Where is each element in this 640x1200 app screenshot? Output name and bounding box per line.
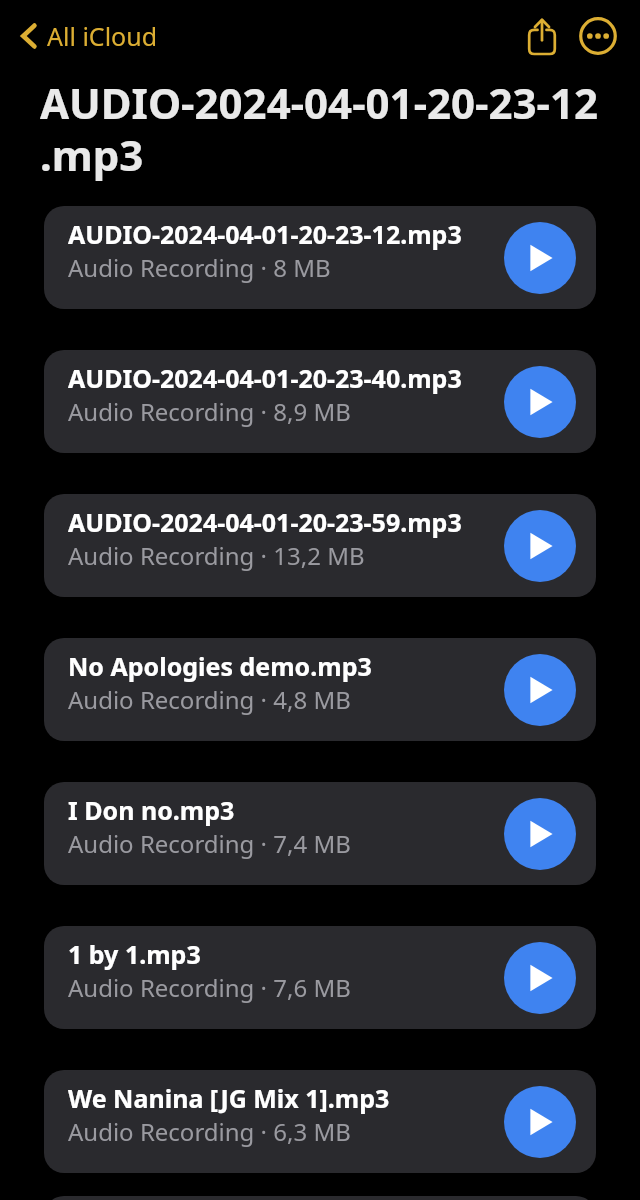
button[interactable]: No Apologies demo.mp3	[44, 638, 596, 741]
button[interactable]: Play AUDIO-2024-04-01-20-23-59.mp3	[504, 510, 576, 582]
button[interactable]: 1 by 1.mp3	[44, 926, 596, 1029]
button[interactable]: AUDIO-2024-04-01-20-23-59.mp3	[44, 494, 596, 597]
button[interactable]	[44, 1196, 596, 1200]
staticText: I Don no.mp3	[68, 793, 235, 827]
button[interactable]: More options	[570, 8, 626, 64]
staticText: Audio Recording · 4,8 MB	[68, 683, 351, 716]
button[interactable]: All iCloud	[14, 13, 164, 59]
staticText: Audio Recording · 13,2 MB	[68, 539, 365, 572]
staticText: Audio Recording · 7,4 MB	[68, 827, 351, 860]
button[interactable]: I Don no.mp3	[44, 782, 596, 885]
staticText: AUDIO-2024-04-01-20-23-12.mp3	[68, 217, 462, 251]
button[interactable]: AUDIO-2024-04-01-20-23-12.mp3	[44, 206, 596, 309]
staticText: AUDIO-2024-04-01-20-23-12.mp3	[40, 74, 600, 183]
staticText: AUDIO-2024-04-01-20-23-59.mp3	[68, 505, 462, 539]
staticText: Audio Recording · 7,6 MB	[68, 971, 351, 1004]
button[interactable]: Play AUDIO-2024-04-01-20-23-40.mp3	[504, 366, 576, 438]
button[interactable]: We Nanina [JG Mix 1].mp3	[44, 1070, 596, 1173]
staticText: We Nanina [JG Mix 1].mp3	[68, 1081, 390, 1115]
staticText: 1 by 1.mp3	[68, 937, 201, 971]
staticText: Audio Recording · 6,3 MB	[68, 1115, 351, 1148]
staticText: All iCloud	[47, 19, 158, 53]
button[interactable]: Play 1 by 1.mp3	[504, 942, 576, 1014]
button[interactable]: Play AUDIO-2024-04-01-20-23-12.mp3	[504, 222, 576, 294]
button[interactable]: AUDIO-2024-04-01-20-23-40.mp3	[44, 350, 596, 453]
button[interactable]: Play We Nanina [JG Mix 1].mp3	[504, 1086, 576, 1158]
button[interactable]: Play I Don no.mp3	[504, 798, 576, 870]
staticText: No Apologies demo.mp3	[68, 649, 372, 683]
button[interactable]: Share	[514, 8, 570, 64]
staticText: Audio Recording · 8,9 MB	[68, 395, 351, 428]
staticText: AUDIO-2024-04-01-20-23-40.mp3	[68, 361, 462, 395]
staticText: Audio Recording · 8 MB	[68, 251, 331, 284]
button[interactable]: Play No Apologies demo.mp3	[504, 654, 576, 726]
